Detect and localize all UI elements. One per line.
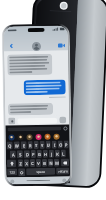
button[interactable]: Emoji keyboard xyxy=(18,168,25,176)
button[interactable]: J xyxy=(49,150,54,158)
other: Flashlight xyxy=(10,179,14,183)
button[interactable] xyxy=(25,133,34,140)
staticText: G xyxy=(38,152,41,157)
button[interactable]: K xyxy=(55,150,60,158)
button[interactable] xyxy=(43,133,52,140)
staticText: C xyxy=(31,161,34,166)
staticText: L xyxy=(62,151,65,157)
staticText: I xyxy=(54,143,56,148)
button[interactable]: N xyxy=(48,159,53,167)
staticText: E xyxy=(23,143,26,148)
staticText: N xyxy=(49,161,53,166)
staticText: J xyxy=(51,152,53,157)
button[interactable]: T xyxy=(34,141,39,149)
button[interactable]: Z xyxy=(18,159,23,167)
button[interactable]: Back xyxy=(6,40,16,52)
button[interactable]: A xyxy=(10,150,16,158)
staticText: F xyxy=(32,152,35,157)
button[interactable]: L xyxy=(61,149,66,158)
other: Camera xyxy=(62,178,66,183)
button[interactable]: Search emoji xyxy=(7,127,61,131)
staticText: K xyxy=(56,152,59,157)
button[interactable]: Backspace xyxy=(61,158,69,167)
button[interactable] xyxy=(16,133,25,140)
staticText: 123 xyxy=(9,170,15,174)
button[interactable]: M xyxy=(54,159,59,167)
button[interactable]: H xyxy=(43,150,48,158)
staticText: O xyxy=(59,143,63,148)
staticText: U xyxy=(47,143,50,148)
staticText: Y xyxy=(41,143,44,148)
staticText: P xyxy=(65,142,68,148)
button[interactable]: Send xyxy=(59,116,66,124)
staticText: B xyxy=(43,161,46,166)
button[interactable]: S xyxy=(17,150,23,158)
staticText: A xyxy=(12,152,15,157)
staticText: space xyxy=(36,170,45,174)
button[interactable]: D xyxy=(24,150,30,158)
staticText: return xyxy=(58,169,68,174)
button[interactable]: space xyxy=(26,168,55,175)
button[interactable]: Y xyxy=(40,141,45,149)
button[interactable]: P xyxy=(64,140,69,149)
staticText: W xyxy=(15,143,19,148)
button[interactable] xyxy=(34,133,43,140)
staticText: T xyxy=(35,143,38,148)
staticText: Z xyxy=(19,161,22,166)
staticText: S xyxy=(19,152,22,157)
button[interactable]: Video call xyxy=(56,40,66,50)
button[interactable] xyxy=(7,54,52,75)
button[interactable]: Camera xyxy=(8,117,15,124)
button[interactable]: C xyxy=(30,159,35,167)
button[interactable] xyxy=(8,103,53,115)
button[interactable]: U xyxy=(46,141,51,149)
staticText: H xyxy=(44,152,47,157)
button[interactable]: G xyxy=(37,150,42,158)
button[interactable]: Q xyxy=(7,141,13,149)
button[interactable] xyxy=(52,133,61,140)
button[interactable]: I xyxy=(52,141,57,149)
button[interactable] xyxy=(7,133,16,140)
button[interactable]: W xyxy=(14,141,20,149)
button[interactable]: Contact xyxy=(32,42,41,51)
button[interactable]: X xyxy=(24,159,29,167)
button[interactable]: V xyxy=(36,159,41,167)
button[interactable]: F xyxy=(31,150,36,158)
button[interactable] xyxy=(24,79,66,95)
button[interactable]: B xyxy=(42,159,47,167)
staticText: Q xyxy=(8,143,12,148)
button[interactable]: E xyxy=(21,141,27,149)
button[interactable]: Settings xyxy=(63,126,67,131)
staticText: V xyxy=(37,161,40,166)
staticText: D xyxy=(26,152,29,157)
button[interactable]: O xyxy=(58,141,63,149)
staticText: M xyxy=(55,161,59,166)
button[interactable]: 123 xyxy=(7,168,17,176)
staticText: R xyxy=(29,143,32,148)
button[interactable]: R xyxy=(28,141,33,149)
button[interactable]: return xyxy=(56,167,69,175)
button[interactable]: Shift xyxy=(7,159,16,168)
staticText: X xyxy=(25,161,28,166)
